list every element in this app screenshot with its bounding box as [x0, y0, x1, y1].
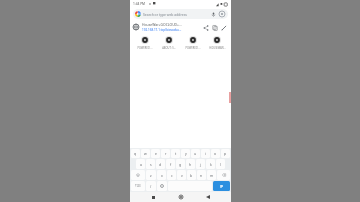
staticText: ABOUT: S... [162, 46, 176, 50]
button[interactable]: Share [201, 23, 210, 32]
staticText: POWERED ... [185, 46, 201, 50]
button[interactable]: ABOUT: S... [157, 36, 181, 50]
staticText: f [170, 162, 172, 167]
staticText: g [179, 162, 182, 167]
staticText: e [155, 151, 157, 156]
button[interactable]: f [166, 159, 175, 169]
button[interactable]: g [176, 159, 185, 169]
button[interactable]: o [211, 149, 220, 158]
staticText: v [181, 173, 183, 178]
staticText: p [224, 151, 227, 156]
staticText: n [200, 173, 203, 178]
button[interactable]: k [206, 159, 215, 169]
staticText: m [210, 173, 214, 178]
button[interactable]: h [186, 159, 195, 169]
staticText: HouseWar+GOCLOUD+... [142, 22, 182, 27]
staticText: 192.168.17.1:tcp/biovadsu... [142, 28, 182, 32]
button[interactable]: q [131, 149, 140, 158]
button[interactable]: POWERED ... [132, 36, 157, 50]
button[interactable]: l [216, 159, 225, 169]
button[interactable]: x [157, 170, 166, 180]
button[interactable]: i [201, 149, 210, 158]
button[interactable]: c [167, 170, 176, 180]
button[interactable]: Voice search [210, 11, 217, 18]
staticText: x [161, 173, 163, 178]
button[interactable]: u [191, 149, 200, 158]
staticText: Search or type web address [143, 12, 187, 17]
staticText: y [185, 151, 187, 156]
button[interactable]: z [146, 170, 156, 180]
staticText: a [140, 162, 142, 167]
button[interactable]: p [221, 149, 230, 158]
button[interactable]: Back [203, 192, 213, 202]
staticText: z [150, 173, 152, 178]
staticText: s [150, 162, 152, 167]
staticText: HOUSEWAR... [209, 46, 226, 50]
staticText: j [200, 162, 201, 167]
button[interactable]: m [207, 170, 216, 180]
staticText: l [220, 162, 221, 167]
button[interactable]: / [146, 181, 156, 191]
button[interactable]: Enter [213, 181, 230, 191]
button[interactable]: y [181, 149, 190, 158]
staticText: q [134, 151, 137, 156]
button[interactable]: d [156, 159, 165, 169]
button[interactable]: HOUSEWAR... [205, 36, 229, 50]
button[interactable]: Search or type web address [133, 9, 228, 19]
staticText: k [210, 162, 212, 167]
staticText: / [150, 184, 152, 189]
staticText: POWERED ... [137, 46, 153, 50]
button[interactable]: v [177, 170, 186, 180]
staticText: ?123 [135, 184, 141, 188]
button[interactable]: Edit [219, 23, 228, 32]
button[interactable]: Recents [148, 192, 158, 202]
staticText: b [190, 173, 193, 178]
button[interactable]: Account [218, 10, 226, 18]
button[interactable]: b [187, 170, 196, 180]
button[interactable]: Copy [210, 23, 219, 32]
staticText: 1:44 PM [133, 2, 146, 6]
button[interactable]: Backspace [217, 170, 230, 180]
button[interactable]: a [136, 159, 145, 169]
staticText: w [144, 151, 147, 156]
staticText: go [220, 184, 224, 188]
button[interactable]: s [146, 159, 155, 169]
button[interactable]: w [141, 149, 150, 158]
staticText: t [175, 151, 177, 156]
button[interactable]: n [197, 170, 206, 180]
button[interactable]: j [196, 159, 205, 169]
button[interactable]: POWERED ... [181, 36, 205, 50]
staticText: o [214, 151, 217, 156]
button[interactable]: r [161, 149, 170, 158]
button[interactable]: ?123 [131, 181, 145, 191]
staticText: u [194, 151, 197, 156]
button[interactable]: Home [176, 192, 186, 202]
staticText: c [171, 173, 173, 178]
staticText: r [165, 151, 167, 156]
button[interactable]: Emoji [157, 181, 167, 191]
button[interactable]: HouseWar+GOCLOUD+... [130, 20, 231, 34]
staticText: d [159, 162, 162, 167]
button[interactable]: e [151, 149, 160, 158]
staticText: h [189, 162, 192, 167]
button[interactable]: t [171, 149, 180, 158]
staticText: i [205, 151, 206, 156]
button[interactable]: Shift [131, 170, 145, 180]
